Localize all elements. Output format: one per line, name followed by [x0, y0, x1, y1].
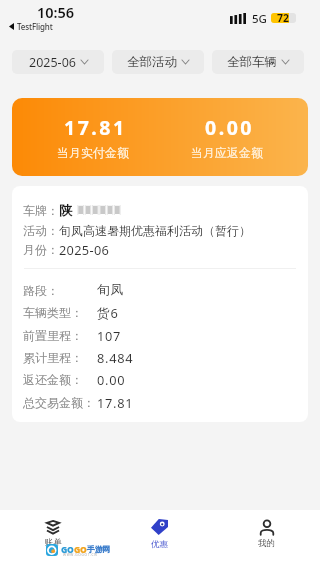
button[interactable]: 我的 — [213, 510, 320, 568]
staticText: 17.81 — [97, 394, 134, 411]
staticText: 陕 — [59, 202, 72, 218]
staticText: GO — [74, 544, 87, 556]
staticText: 旬凤高速暑期优惠福利活动（暂行） — [59, 223, 251, 238]
staticText: 当月应返金额 — [191, 145, 263, 160]
staticText: 当月实付金额 — [57, 145, 129, 160]
staticText: 2025-06 — [29, 54, 76, 71]
staticText: 优惠 — [151, 539, 168, 550]
staticText: 总交易金额： — [23, 395, 97, 410]
staticText: 0.00 — [205, 114, 254, 141]
staticText: 107 — [97, 327, 122, 344]
staticText: 月份： — [23, 242, 59, 257]
staticText: 手游网 — [87, 544, 111, 554]
staticText: 0.00 — [97, 371, 126, 388]
staticText: 累计里程： — [23, 350, 97, 365]
staticText: 10:56 — [33, 2, 78, 22]
staticText: WWW.GOGO1.CN — [63, 553, 98, 557]
staticText: 前置里程： — [23, 328, 97, 343]
staticText: 2025-06 — [59, 241, 110, 258]
staticText: 5G — [252, 11, 267, 27]
button[interactable]: 2025-06 — [12, 50, 104, 74]
staticText: 全部活动 — [127, 54, 177, 70]
staticText: 旬凤 — [97, 282, 124, 298]
staticText: TestFlight — [17, 21, 53, 32]
button[interactable]: 优惠 — [106, 510, 213, 568]
staticText: 账单 — [45, 537, 62, 548]
button[interactable]: 全部车辆 — [212, 50, 304, 74]
staticText: 货6 — [97, 304, 119, 321]
staticText: 活动： — [23, 223, 59, 238]
staticText: GO — [61, 544, 74, 556]
staticText: 车辆类型： — [23, 305, 97, 320]
staticText: 路段： — [23, 283, 97, 298]
button[interactable]: 全部活动 — [112, 50, 204, 74]
staticText: 17.81 — [64, 114, 127, 141]
staticText: 8.484 — [97, 349, 134, 366]
staticText: 返还金额： — [23, 372, 97, 387]
staticText: 车牌： — [23, 203, 59, 218]
staticText: 全部车辆 — [227, 54, 277, 70]
staticText: 72 — [274, 11, 292, 25]
button[interactable]: 账单 — [0, 510, 106, 568]
staticText: 我的 — [258, 538, 275, 549]
